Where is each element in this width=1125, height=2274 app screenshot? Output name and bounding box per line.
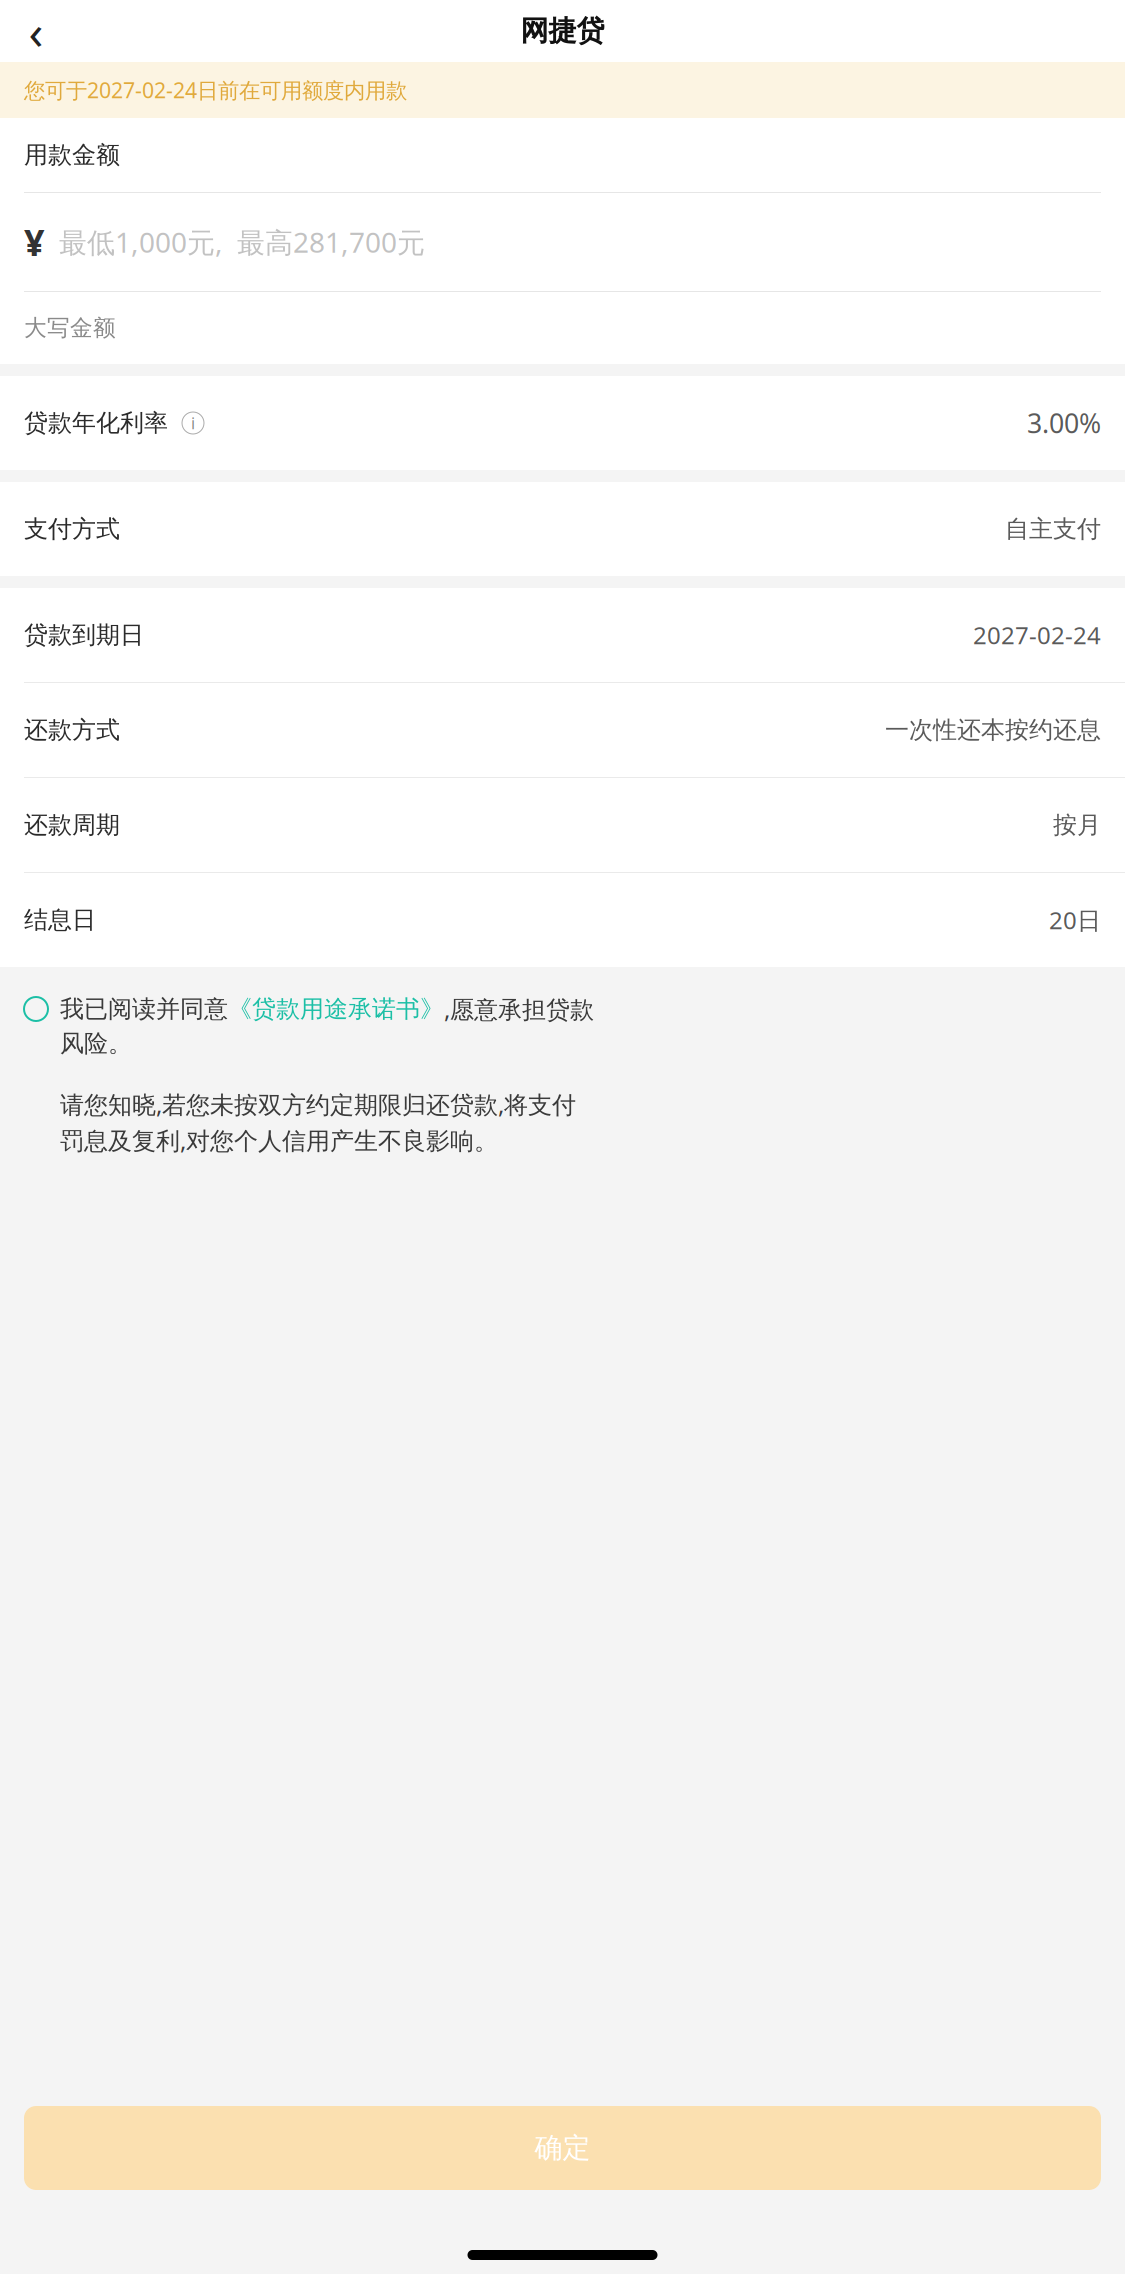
button[interactable]: Back [8, 3, 64, 59]
staticText: 按月 [1053, 810, 1101, 840]
staticText: 网捷贷 [520, 14, 604, 48]
staticText: 罚息及复利,对您个人信用产生不良影响。 [60, 1124, 498, 1156]
staticText: i [191, 412, 195, 434]
staticText: 我已阅读并同意 [60, 994, 228, 1024]
staticText: 您可于2027-02-24日前在可用额度内用款 [24, 76, 407, 104]
button[interactable]: 确定 [24, 2106, 1101, 2190]
staticText: 结息日 [24, 905, 96, 935]
staticText: 一次性还本按约还息 [885, 715, 1101, 745]
staticText: 贷款年化利率 [24, 408, 168, 438]
staticText: 支付方式 [24, 514, 120, 544]
button[interactable]: 我已阅读并同意 [0, 967, 1125, 1058]
staticText: 确定 [534, 2131, 590, 2165]
staticText: 还款方式 [24, 715, 120, 745]
staticText: 最低1,000元, 最高281,700元 [59, 223, 425, 261]
staticText: 还款周期 [24, 810, 120, 840]
staticText: 3.00% [1027, 405, 1101, 441]
staticText: 风险。 [60, 1029, 132, 1058]
staticText: 20日 [1049, 904, 1101, 936]
staticText: 《贷款用途承诺书》 [228, 994, 444, 1024]
button[interactable]: 贷款年化利率 [0, 376, 1125, 470]
button[interactable]: 支付方式 [0, 482, 1125, 576]
staticText: 贷款到期日 [24, 620, 144, 650]
staticText: 自主支付 [1005, 514, 1101, 544]
staticText: ‹ [28, 0, 43, 63]
staticText: 请您知晓,若您未按双方约定期限归还贷款,将支付 [60, 1088, 576, 1120]
staticText: 大写金额 [24, 314, 116, 342]
staticText: ¥ [24, 218, 45, 266]
staticText: 2027-02-24 [973, 619, 1101, 651]
staticText: ,愿意承担贷款 [444, 993, 594, 1025]
staticText: 用款金额 [24, 140, 120, 170]
